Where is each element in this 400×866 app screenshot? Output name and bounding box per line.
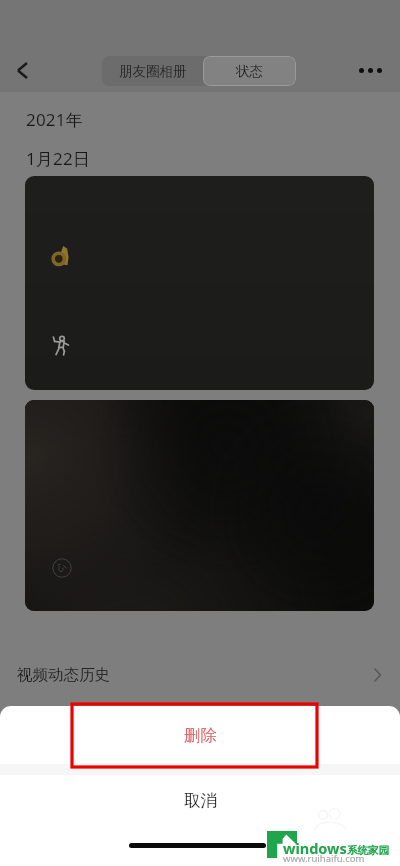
button[interactable]: 删除 xyxy=(0,706,400,764)
button[interactable]: More options xyxy=(351,51,389,89)
staticText: 取消 xyxy=(184,790,217,811)
button[interactable]: Back xyxy=(3,51,41,89)
button[interactable]: 状态 xyxy=(203,56,296,86)
staticText: 状态 xyxy=(236,63,263,80)
staticText: 视频动态历史 xyxy=(17,665,110,685)
staticText: 2021年 xyxy=(26,108,83,131)
staticText: www.ruihaifu.com xyxy=(283,852,365,865)
staticText: 系统家园 xyxy=(347,844,389,857)
button[interactable]: 取消 xyxy=(0,775,400,825)
staticText: 1月22日 xyxy=(26,147,91,170)
staticText: 朋友圈相册 xyxy=(119,63,187,80)
button[interactable]: 视频动态历史 xyxy=(0,643,400,706)
button[interactable]: 朋友圈相册 xyxy=(102,56,203,86)
staticText: 删除 xyxy=(184,725,217,746)
button[interactable] xyxy=(25,176,374,390)
staticText: windows xyxy=(283,838,347,858)
button[interactable] xyxy=(25,400,374,611)
